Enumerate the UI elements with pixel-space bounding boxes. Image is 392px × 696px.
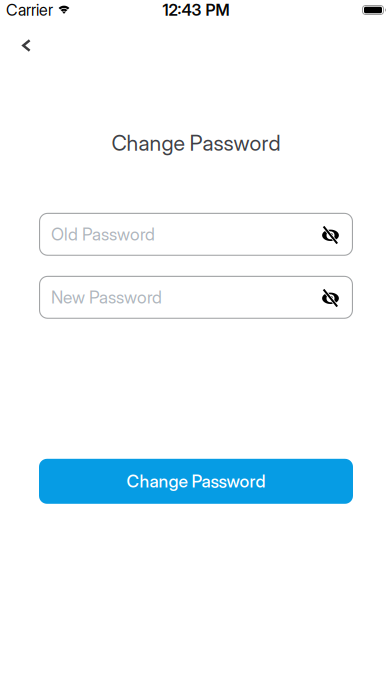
staticText: Old Password (51, 224, 155, 245)
button[interactable]: Show password (322, 226, 339, 242)
button[interactable]: Back (0, 20, 31, 68)
staticText: Change Password (126, 471, 265, 492)
staticText: New Password (51, 287, 162, 308)
staticText: Carrier (6, 0, 53, 20)
staticText: 12:43 PM (162, 0, 229, 20)
staticText: Change Password (111, 130, 280, 156)
button[interactable]: Change Password (39, 459, 353, 504)
button[interactable]: Show password (322, 289, 339, 305)
